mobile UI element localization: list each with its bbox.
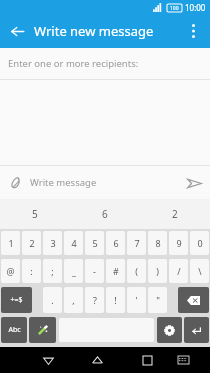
staticText: : — [30, 265, 33, 277]
button[interactable]: Voice or emoji input — [29, 317, 56, 343]
button[interactable]: +=$ — [1, 287, 32, 313]
staticText: . — [51, 294, 54, 306]
staticText: 8 — [155, 237, 161, 249]
staticText: @ — [6, 265, 15, 277]
button[interactable]: - — [85, 259, 104, 283]
button[interactable]: ) — [148, 259, 167, 283]
button[interactable]: # — [106, 259, 125, 283]
button[interactable]: 2 — [140, 199, 210, 229]
staticText: \ — [198, 265, 202, 277]
staticText: ) — [156, 265, 159, 277]
button[interactable]: ' — [127, 287, 146, 313]
button[interactable]: , — [64, 287, 83, 313]
staticText: _ — [72, 265, 76, 277]
button[interactable]: Recents — [132, 347, 163, 373]
button[interactable]: @ — [1, 259, 20, 283]
staticText: Enter one or more recipients: — [8, 57, 139, 70]
button[interactable]: Send — [178, 167, 210, 199]
staticText: 4 — [71, 237, 77, 249]
staticText: +=$ — [10, 295, 23, 305]
button[interactable]: / — [169, 259, 188, 283]
button[interactable]: 6 — [70, 199, 140, 229]
button[interactable]: . — [43, 287, 62, 313]
staticText: ( — [135, 265, 138, 277]
staticText: " — [156, 294, 160, 306]
button[interactable]: Backspace — [178, 287, 209, 313]
button[interactable]: Hide keyboard — [168, 347, 199, 373]
staticText: 0 — [197, 237, 203, 249]
button[interactable]: ? — [85, 287, 104, 313]
button[interactable]: 1 — [1, 231, 20, 255]
staticText: / — [177, 265, 181, 277]
staticText: 10:00 — [185, 2, 206, 13]
button[interactable]: \ — [190, 259, 209, 283]
staticText: ! — [114, 294, 117, 306]
button[interactable]: 2 — [22, 231, 41, 255]
button[interactable]: 8 — [148, 231, 167, 255]
staticText: 1 — [8, 237, 14, 249]
button[interactable]: ; — [43, 259, 62, 283]
button[interactable]: More options — [176, 14, 210, 48]
staticText: 6 — [102, 207, 108, 221]
button[interactable]: 4 — [64, 231, 83, 255]
button[interactable]: 5 — [0, 199, 70, 229]
staticText: Abc — [8, 325, 21, 335]
staticText: 100 — [170, 5, 179, 12]
button[interactable]: ! — [106, 287, 125, 313]
button[interactable]: 3 — [43, 231, 62, 255]
staticText: ; — [51, 265, 54, 277]
button[interactable]: Write message — [30, 176, 178, 189]
staticText: # — [113, 265, 119, 277]
staticText: 7 — [134, 237, 140, 249]
button[interactable]: Back — [33, 347, 63, 373]
staticText: 2 — [29, 237, 35, 249]
staticText: 2 — [172, 207, 178, 221]
button[interactable]: ( — [127, 259, 146, 283]
button[interactable]: 0 — [190, 231, 209, 255]
button[interactable]: 6 — [106, 231, 125, 255]
staticText: 9 — [176, 237, 182, 249]
button[interactable]: Abc — [1, 317, 27, 343]
button[interactable]: : — [22, 259, 41, 283]
staticText: 5 — [32, 207, 38, 221]
staticText: , — [72, 294, 75, 306]
button[interactable]: Back — [0, 14, 34, 48]
staticText: 5 — [92, 237, 98, 249]
staticText: 3 — [50, 237, 56, 249]
button[interactable]: Home — [82, 347, 113, 373]
button[interactable]: Attach — [0, 168, 30, 198]
button[interactable]: " — [148, 287, 167, 313]
button[interactable]: 9 — [169, 231, 188, 255]
button[interactable]: 5 — [85, 231, 104, 255]
staticText: ? — [93, 294, 97, 306]
button[interactable]: Settings — [157, 317, 182, 343]
staticText: Write new message — [34, 22, 154, 40]
staticText: 6 — [113, 237, 119, 249]
button[interactable]: 7 — [127, 231, 146, 255]
staticText: - — [93, 265, 96, 277]
staticText: ' — [135, 294, 138, 306]
button[interactable]: _ — [64, 259, 83, 283]
button[interactable]: Enter one or more recipients: — [0, 48, 210, 79]
button[interactable]: Enter — [184, 317, 209, 343]
